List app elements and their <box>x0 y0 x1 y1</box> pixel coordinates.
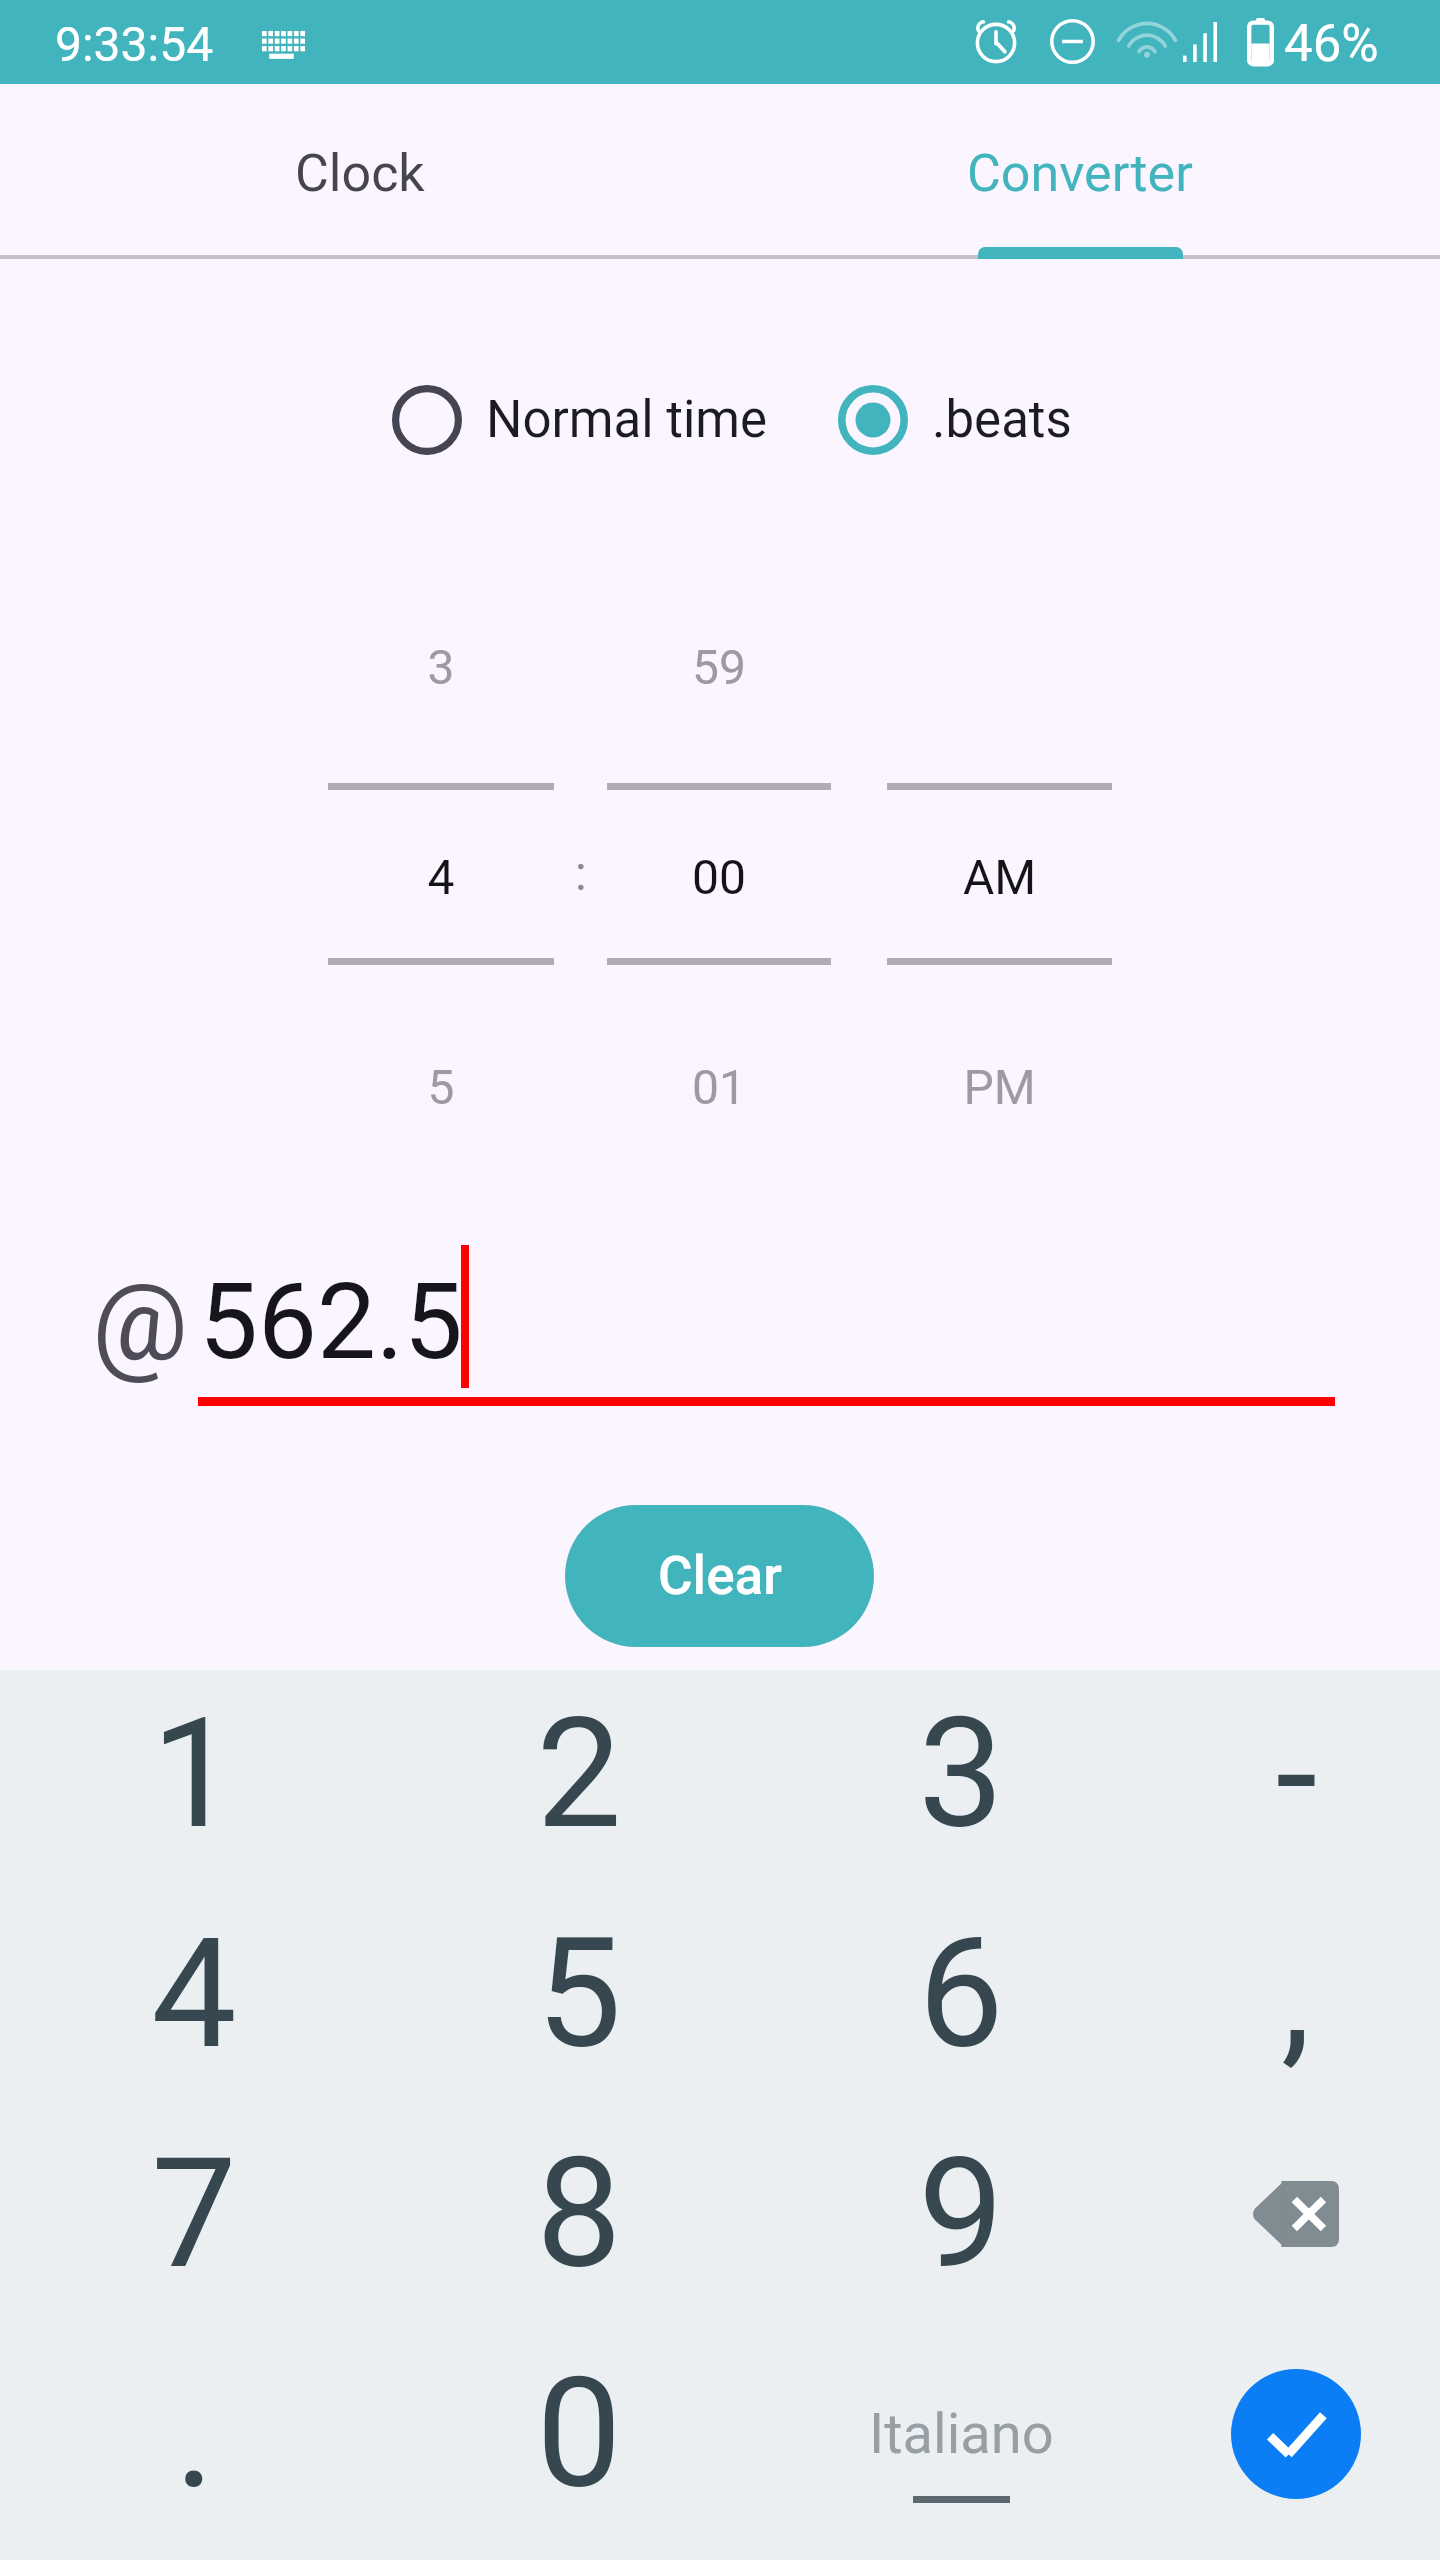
staticText: 5 <box>328 1059 554 1115</box>
button[interactable]: .beats <box>835 380 1072 460</box>
staticText: Clock <box>295 143 425 204</box>
button[interactable]: 9 <box>770 2104 1128 2324</box>
staticText: 01 <box>607 1059 831 1115</box>
staticText: 8 <box>536 2125 622 2303</box>
button[interactable]: Backspace <box>1128 2104 1440 2324</box>
staticText: 00 <box>607 849 831 905</box>
staticText: Normal time <box>486 390 768 450</box>
button[interactable]: 5 <box>385 1884 770 2104</box>
staticText: . <box>174 2345 215 2523</box>
button[interactable]: Converter <box>720 86 1440 261</box>
button[interactable]: 4 <box>328 620 554 1120</box>
staticText: .beats <box>932 390 1072 450</box>
staticText: : <box>575 845 587 901</box>
staticText: 0 <box>536 2345 622 2523</box>
staticText: 9:33:54 <box>55 16 214 72</box>
staticText: 5 <box>536 1905 622 2083</box>
button[interactable]: decimal point <box>0 2324 385 2544</box>
staticText: 1 <box>151 1685 237 1863</box>
staticText: 562.5 <box>199 1261 463 1384</box>
staticText: 3 <box>918 1685 1004 1863</box>
button[interactable]: comma <box>1128 1884 1440 2104</box>
staticText: Clear <box>658 1545 782 1607</box>
staticText: 9 <box>918 2125 1004 2303</box>
staticText: Converter <box>967 143 1193 204</box>
button[interactable]: 3 <box>770 1664 1128 1884</box>
button[interactable]: Clock <box>0 86 720 261</box>
staticText: 3 <box>328 639 554 695</box>
staticText: 2 <box>536 1685 622 1863</box>
button[interactable]: beats value @ 562.5 <box>92 1250 1335 1406</box>
staticText: 59 <box>607 639 831 695</box>
button[interactable]: Clear <box>565 1505 874 1647</box>
button[interactable]: 8 <box>385 2104 770 2324</box>
staticText: 6 <box>918 1905 1004 2083</box>
button[interactable]: 6 <box>770 1884 1128 2104</box>
staticText: - <box>1275 1685 1318 1863</box>
button[interactable]: Italiano keyboard <box>770 2324 1128 2544</box>
staticText: 7 <box>151 2125 237 2303</box>
staticText: PM <box>887 1059 1112 1115</box>
button[interactable]: 4 <box>0 1884 385 2104</box>
staticText: AM <box>887 849 1112 905</box>
button[interactable]: Normal time <box>389 380 768 460</box>
button[interactable]: minus <box>1128 1664 1440 1884</box>
staticText: Italiano <box>869 2401 1054 2467</box>
other: Confirm <box>1231 2369 1361 2499</box>
staticText: @ <box>92 1260 189 1385</box>
staticText: 46% <box>1284 14 1379 74</box>
button[interactable]: 2 <box>385 1664 770 1884</box>
button[interactable]: 7 <box>0 2104 385 2324</box>
button[interactable]: Confirm <box>1128 2324 1440 2544</box>
staticText: , <box>1281 1905 1311 2083</box>
other: Backspace <box>1253 2181 1339 2247</box>
button[interactable]: 0 <box>385 2324 770 2544</box>
staticText: 4 <box>151 1905 237 2083</box>
staticText: 4 <box>328 849 554 905</box>
button[interactable]: 1 <box>0 1664 385 1884</box>
button[interactable]: AM / PM <box>887 620 1112 1120</box>
button[interactable]: 00 <box>607 620 831 1120</box>
